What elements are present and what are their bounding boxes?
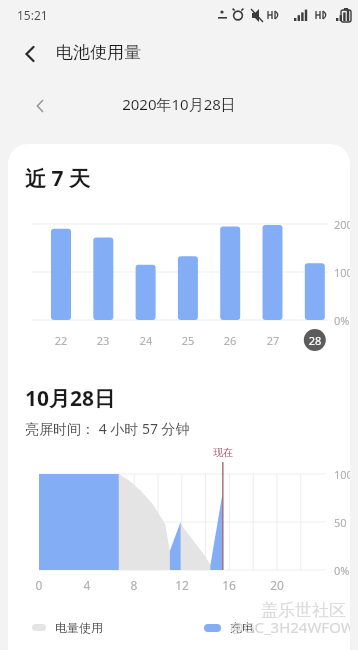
staticText: 24 xyxy=(137,333,155,348)
staticText: 电量使用 xyxy=(55,620,103,635)
staticText: 100 xyxy=(334,265,350,280)
staticText: @GC_3H24WFOW xyxy=(230,617,350,637)
staticText: 10月28日 xyxy=(25,384,116,413)
staticText: 25 xyxy=(179,333,197,348)
staticText: 8 xyxy=(124,577,144,593)
staticText: 27 xyxy=(264,333,282,348)
staticText: 现在 xyxy=(213,446,233,459)
staticText: 23 xyxy=(94,333,112,348)
staticText: 50 xyxy=(334,515,347,530)
staticText: 15:21 xyxy=(17,7,48,23)
staticText: 盖乐世社区 xyxy=(261,600,346,621)
staticText: 20 xyxy=(267,577,287,593)
button[interactable]: 充电 xyxy=(204,620,254,635)
button[interactable]: Previous day xyxy=(24,90,56,122)
staticText: 4 xyxy=(77,577,97,593)
staticText: 充电 xyxy=(230,620,254,635)
staticText: 200 xyxy=(334,217,350,232)
staticText: 0 xyxy=(29,577,49,593)
staticText: 22 xyxy=(52,333,70,348)
staticText: 2020年10月28日 xyxy=(122,94,236,114)
staticText: 0% xyxy=(334,563,350,578)
staticText: 电池使用量 xyxy=(56,42,141,63)
staticText: 近 7 天 xyxy=(25,164,90,193)
staticText: 100 xyxy=(334,467,350,482)
button[interactable]: 电量使用 xyxy=(32,620,103,635)
staticText: 亮屏时间： 4 小时 57 分钟 xyxy=(25,419,190,438)
staticText: 12 xyxy=(172,577,192,593)
staticText: 0% xyxy=(334,313,350,328)
staticText: 16 xyxy=(219,577,239,593)
staticText: 28 xyxy=(306,333,324,348)
button[interactable]: Back xyxy=(12,36,48,72)
staticText: 26 xyxy=(221,333,239,348)
